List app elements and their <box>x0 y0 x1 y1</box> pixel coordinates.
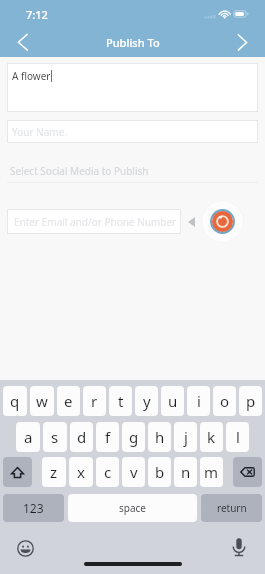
button[interactable]: r <box>83 386 106 416</box>
button[interactable]: z <box>42 457 66 487</box>
button[interactable]: A flower <box>7 63 258 112</box>
button[interactable]: k <box>200 422 223 452</box>
button[interactable]: e <box>57 386 80 416</box>
staticText: e <box>64 391 73 411</box>
staticText: Enter Email and/or Phone Number <box>14 215 177 229</box>
staticText: r <box>91 391 98 411</box>
button[interactable]: b <box>148 457 171 487</box>
staticText: o <box>220 391 230 411</box>
button[interactable]: n <box>174 457 197 487</box>
button[interactable]: return <box>201 494 262 522</box>
button[interactable]: u <box>161 386 184 416</box>
button[interactable]: x <box>69 457 93 487</box>
staticText: Your Name. <box>12 125 67 139</box>
staticText: s <box>51 427 59 447</box>
button[interactable]: w <box>30 386 54 416</box>
button[interactable]: i <box>187 386 210 416</box>
staticText: 123 <box>23 500 44 516</box>
staticText: return <box>217 501 247 515</box>
staticText: a <box>24 427 33 447</box>
staticText: k <box>207 427 216 447</box>
staticText: t <box>118 391 124 411</box>
button[interactable]: o <box>213 386 236 416</box>
staticText: x <box>77 462 85 482</box>
button[interactable]: y <box>135 386 158 416</box>
staticText: c <box>104 462 112 482</box>
button[interactable]: a <box>16 422 40 452</box>
staticText: g <box>129 427 139 447</box>
staticText: y <box>143 391 151 411</box>
staticText: Publish To <box>106 35 160 50</box>
button[interactable]: Dictation <box>228 536 250 558</box>
staticText: A flower <box>12 69 51 83</box>
button[interactable]: t <box>109 386 132 416</box>
button[interactable]: space <box>68 494 197 522</box>
button[interactable]: Back <box>0 28 45 57</box>
staticText: j <box>184 427 188 447</box>
staticText: n <box>181 462 191 482</box>
staticText: l <box>236 427 240 447</box>
staticText: w <box>36 391 48 411</box>
button[interactable]: d <box>70 422 93 452</box>
button[interactable]: v <box>122 457 145 487</box>
staticText: f <box>105 427 111 447</box>
button[interactable]: p <box>239 386 262 416</box>
staticText: q <box>10 391 20 411</box>
button[interactable]: g <box>122 422 145 452</box>
button[interactable]: h <box>148 422 171 452</box>
button[interactable]: Social media app <box>201 200 244 243</box>
button[interactable]: 123 <box>3 494 64 522</box>
button[interactable]: c <box>96 457 119 487</box>
button[interactable]: Shift <box>3 457 32 487</box>
staticText: d <box>77 427 87 447</box>
button[interactable]: m <box>200 457 223 487</box>
staticText: u <box>168 391 178 411</box>
button[interactable]: Your Name. <box>7 120 258 143</box>
staticText: p <box>246 391 256 411</box>
button[interactable]: Enter Email and/or Phone Number <box>7 209 181 234</box>
button[interactable]: Emoji keyboard <box>15 538 36 559</box>
staticText: m <box>204 462 219 482</box>
staticText: z <box>50 462 58 482</box>
button[interactable]: f <box>96 422 119 452</box>
staticText: 7:12 <box>26 7 48 22</box>
staticText: Select Social Media to Publish <box>10 164 149 178</box>
staticText: i <box>197 391 201 411</box>
staticText: h <box>155 427 165 447</box>
staticText: v <box>130 462 138 482</box>
button[interactable]: l <box>226 422 249 452</box>
staticText: space <box>119 501 146 515</box>
button[interactable]: q <box>3 386 27 416</box>
staticText: b <box>155 462 165 482</box>
button[interactable]: Forward <box>220 28 265 57</box>
button[interactable]: s <box>43 422 67 452</box>
button[interactable]: Backspace <box>233 457 262 487</box>
button[interactable]: j <box>174 422 197 452</box>
